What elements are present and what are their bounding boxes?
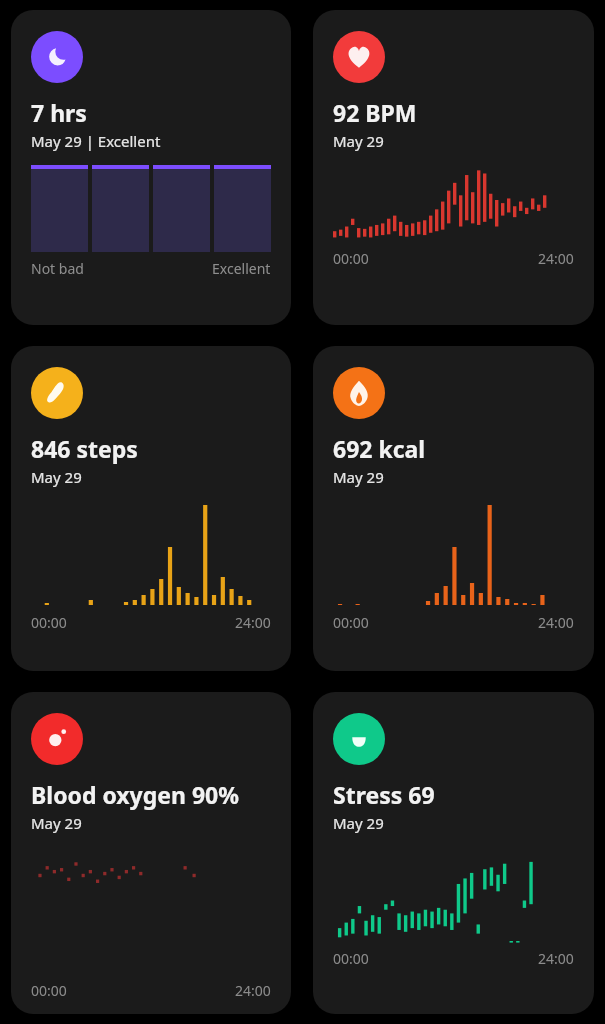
other: Steps [31,367,83,419]
staticText: 92 BPM [333,97,417,128]
staticText: 00:00 [333,613,369,632]
staticText: 24:00 [235,613,271,632]
staticText: May 29 [31,813,82,833]
button[interactable]: Stress [313,692,594,1014]
button[interactable]: Calories [313,346,594,671]
button[interactable]: Steps [11,346,291,671]
staticText: 24:00 [235,981,271,1000]
staticText: 24:00 [538,613,574,632]
staticText: 24:00 [538,949,574,968]
staticText: 7 hrs [31,97,87,128]
staticText: Not bad [31,259,84,278]
other: Calories [333,367,385,419]
staticText: 00:00 [31,613,67,632]
staticText: May 29 [333,467,384,487]
staticText: 692 kcal [333,433,426,464]
button[interactable]: Sleep [11,10,291,325]
button[interactable]: Blood oxygen [11,692,291,1014]
staticText: May 29 [31,467,82,487]
staticText: 00:00 [31,981,67,1000]
other: Blood oxygen [31,713,83,765]
other: Heart rate [333,31,385,83]
other: Stress [333,713,385,765]
other: Sleep [31,31,83,83]
staticText: May 29 [333,131,384,151]
staticText: 00:00 [333,249,369,268]
staticText: May 29 | Excellent [31,131,161,151]
staticText: 24:00 [538,249,574,268]
staticText: 846 steps [31,433,138,464]
staticText: Stress 69 [333,779,435,810]
staticText: Blood oxygen 90% [31,779,240,810]
button[interactable]: Heart rate [313,10,594,325]
staticText: 00:00 [333,949,369,968]
staticText: Excellent [212,259,271,278]
staticText: May 29 [333,813,384,833]
